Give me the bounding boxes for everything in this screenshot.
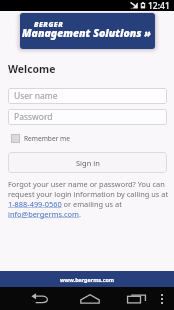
- staticText: User name: [14, 90, 58, 102]
- staticText: Sign in: [76, 158, 100, 168]
- button[interactable]: More options: [152, 288, 172, 309]
- button[interactable]: Recents: [118, 288, 154, 309]
- button[interactable]: User name: [8, 88, 167, 104]
- button[interactable]: Home: [71, 288, 108, 309]
- staticText: Remember me: [24, 134, 70, 143]
- button[interactable]: Sign in: [8, 152, 167, 173]
- button[interactable]: www.bergerms.com: [60, 276, 115, 283]
- staticText: Password: [14, 111, 53, 123]
- button[interactable]: Password: [8, 109, 167, 125]
- staticText: BERGER: [34, 20, 64, 30]
- button[interactable]: Remember me: [11, 134, 70, 143]
- button[interactable]: Forgot your user name or password? You c…: [8, 179, 171, 219]
- staticText: Management Solutions »: [22, 26, 151, 40]
- staticText: Welcome: [8, 62, 56, 76]
- button[interactable]: Back: [21, 288, 58, 309]
- staticText: 12:41: [148, 0, 170, 11]
